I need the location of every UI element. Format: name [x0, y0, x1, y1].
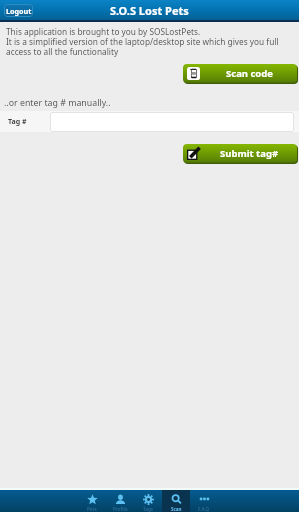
staticText: Pets: [87, 506, 97, 512]
staticText: This application is brought to you by SO…: [6, 26, 279, 57]
button[interactable]: Scan: [162, 490, 190, 512]
staticText: Scan code: [226, 67, 273, 80]
button[interactable]: [50, 112, 294, 132]
button[interactable]: Logout: [4, 4, 33, 17]
staticText: S.O.S Lost Pets: [110, 3, 189, 18]
button[interactable]: Submit tag#: [183, 144, 297, 163]
staticText: Tag #: [8, 117, 27, 127]
staticText: Submit tag#: [220, 147, 279, 160]
staticText: Scan: [171, 506, 182, 512]
staticText: F.A.Q: [198, 506, 210, 512]
button[interactable]: Tags: [134, 490, 162, 512]
button[interactable]: Pets: [78, 490, 106, 512]
staticText: Profile: [113, 506, 128, 512]
button[interactable]: Scan code: [183, 64, 297, 83]
button[interactable]: F.A.Q: [190, 490, 218, 512]
staticText: Logout: [6, 6, 32, 16]
button[interactable]: Profile: [106, 490, 134, 512]
staticText: Tags: [143, 506, 154, 512]
staticText: ..or enter tag # manually..: [4, 97, 111, 109]
